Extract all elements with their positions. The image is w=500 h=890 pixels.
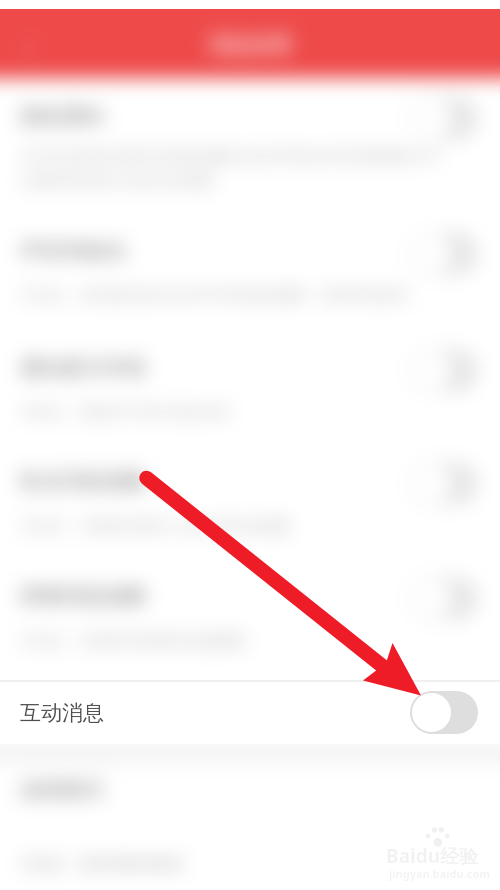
button[interactable]: Toggle notification — [410, 349, 478, 392]
staticText: 互动消息 — [20, 700, 104, 726]
staticText: Baidu经验 — [386, 843, 479, 869]
staticText: 群聊消息提醒 — [20, 583, 146, 609]
staticText: 私信消息提醒 — [20, 468, 146, 494]
staticText: 开启后，你将收到陌生人发来的私信提醒 — [20, 517, 290, 536]
button[interactable]: Toggle notification — [410, 232, 478, 275]
staticText: 勿扰模式 — [20, 777, 104, 803]
staticText: jingyan.baidu.com — [389, 866, 491, 881]
staticText: 声音和振动 — [20, 238, 125, 264]
staticText: 消息设置 — [208, 32, 292, 58]
staticText: 接收通知 — [20, 103, 104, 129]
button[interactable]: Toggle notification — [410, 691, 478, 734]
button[interactable]: 互动消息 — [0, 681, 500, 744]
button[interactable]: Toggle notification — [410, 462, 478, 505]
staticText: 通知显示详情 — [20, 355, 146, 381]
button[interactable]: Toggle notification — [410, 577, 478, 620]
button[interactable]: Toggle notification — [410, 97, 478, 140]
